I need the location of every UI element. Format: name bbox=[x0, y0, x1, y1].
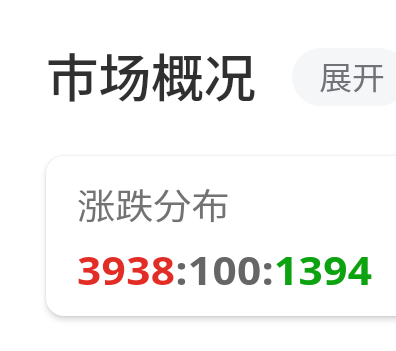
button[interactable]: 涨跌分布 bbox=[46, 156, 396, 316]
staticText: 3938:100:1394 bbox=[77, 242, 373, 296]
staticText: 涨跌分布 bbox=[77, 178, 231, 229]
staticText: 展开 bbox=[319, 53, 385, 98]
staticText: 市场概况 bbox=[46, 38, 257, 112]
button[interactable]: 展开 bbox=[292, 48, 396, 106]
